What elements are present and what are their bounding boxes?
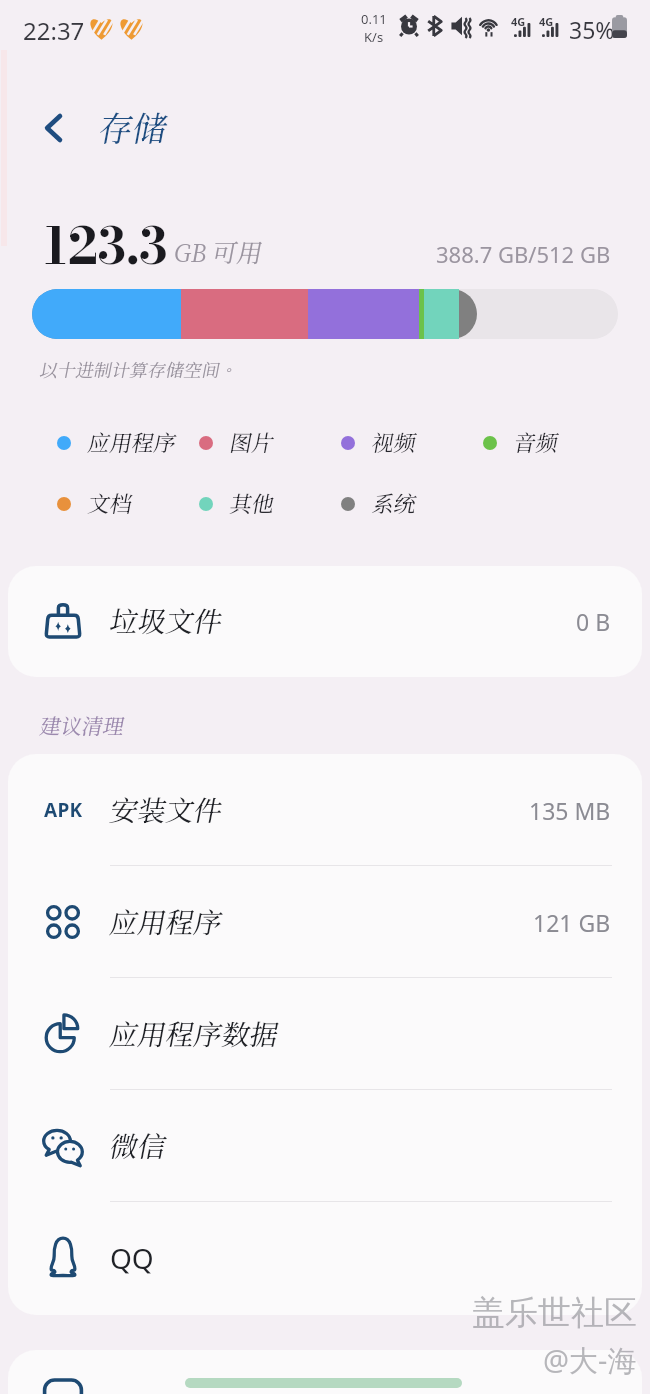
staticText: 应用程序数据 — [110, 1018, 279, 1051]
staticText: 音频 — [514, 430, 559, 456]
staticText: 应用程序 — [88, 430, 177, 456]
staticText: 微信 — [110, 1130, 167, 1163]
staticText: 388.7 GB/512 GB — [436, 239, 611, 269]
button[interactable]: 应用程序 — [8, 866, 642, 978]
staticText: 垃圾文件 — [110, 605, 223, 638]
staticText: 121 GB — [533, 907, 611, 938]
staticText: QQ — [110, 1239, 154, 1277]
staticText: 22:37 — [23, 14, 85, 47]
staticText: 135 MB — [529, 795, 611, 826]
button[interactable]: Back — [30, 104, 78, 152]
staticText: 0.11 — [361, 10, 387, 28]
staticText: 盖乐世社区 — [472, 1292, 637, 1334]
staticText: 其他 — [230, 491, 275, 517]
staticText: K/s — [364, 28, 384, 46]
button[interactable]: 垃圾文件 — [8, 566, 642, 677]
button[interactable]: 应用程序数据 — [8, 978, 642, 1090]
staticText: 存储 — [99, 108, 167, 148]
button[interactable] — [8, 1350, 642, 1394]
staticText: 以十进制计算存储空间。 — [40, 360, 238, 381]
staticText: 应用程序 — [110, 906, 223, 939]
staticText: GB 可用 — [174, 238, 263, 268]
button[interactable]: 微信 — [8, 1090, 642, 1202]
staticText: 图片 — [230, 430, 275, 456]
staticText: 系统 — [372, 491, 417, 517]
staticText: 35% — [569, 14, 615, 45]
staticText: 4G — [511, 14, 526, 29]
button[interactable]: APK — [8, 754, 642, 866]
staticText: 安装文件 — [110, 794, 223, 827]
staticText: 视频 — [372, 430, 417, 456]
staticText: 建议清理 — [40, 714, 124, 739]
staticText: 123.3 — [43, 208, 168, 284]
staticText: APK — [44, 797, 83, 823]
staticText: 4G — [539, 14, 554, 29]
button[interactable]: QQ — [8, 1202, 642, 1314]
staticText: @大-海 — [543, 1340, 637, 1380]
staticText: 文档 — [88, 491, 133, 517]
staticText: 0 B — [576, 606, 611, 637]
